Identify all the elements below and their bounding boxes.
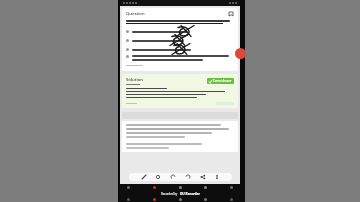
- button[interactable]: Record: [152, 185, 157, 190]
- button[interactable]: Pen: [141, 174, 147, 180]
- button[interactable]: Apps: [203, 185, 208, 190]
- button[interactable]: [126, 55, 234, 61]
- button[interactable]: Close: [229, 197, 234, 202]
- button[interactable]: Redo: [185, 174, 191, 180]
- button[interactable]: Share: [200, 174, 206, 180]
- button[interactable]: Question: [122, 8, 238, 71]
- staticText: Recorded by: [161, 192, 178, 196]
- button[interactable]: Pause: [178, 197, 183, 202]
- button[interactable]: More: [214, 174, 220, 180]
- staticText: DU Recorder: [180, 192, 200, 196]
- button[interactable]: Recents: [229, 185, 234, 190]
- button[interactable]: [126, 45, 234, 54]
- button[interactable]: Highlight: [155, 174, 161, 180]
- staticText: Question: [126, 11, 145, 17]
- button[interactable]: Undo: [170, 174, 176, 180]
- button[interactable]: Pen: [129, 173, 232, 181]
- button[interactable]: Back: [126, 185, 131, 190]
- button[interactable]: [126, 36, 234, 45]
- button[interactable]: Stop: [152, 197, 157, 202]
- button[interactable]: Menu: [126, 197, 131, 202]
- button[interactable]: [122, 121, 238, 152]
- button[interactable]: Solution: [122, 74, 238, 108]
- button[interactable]: Bookmark: [228, 11, 234, 17]
- staticText: Solution: [126, 77, 143, 83]
- staticText: Correct Answer: [213, 79, 232, 83]
- button[interactable]: Camera: [203, 197, 208, 202]
- button[interactable]: [126, 27, 234, 36]
- button[interactable]: Home: [178, 185, 183, 190]
- button[interactable]: Correct Answer: [207, 78, 234, 84]
- button[interactable]: Recording indicator: [235, 48, 246, 59]
